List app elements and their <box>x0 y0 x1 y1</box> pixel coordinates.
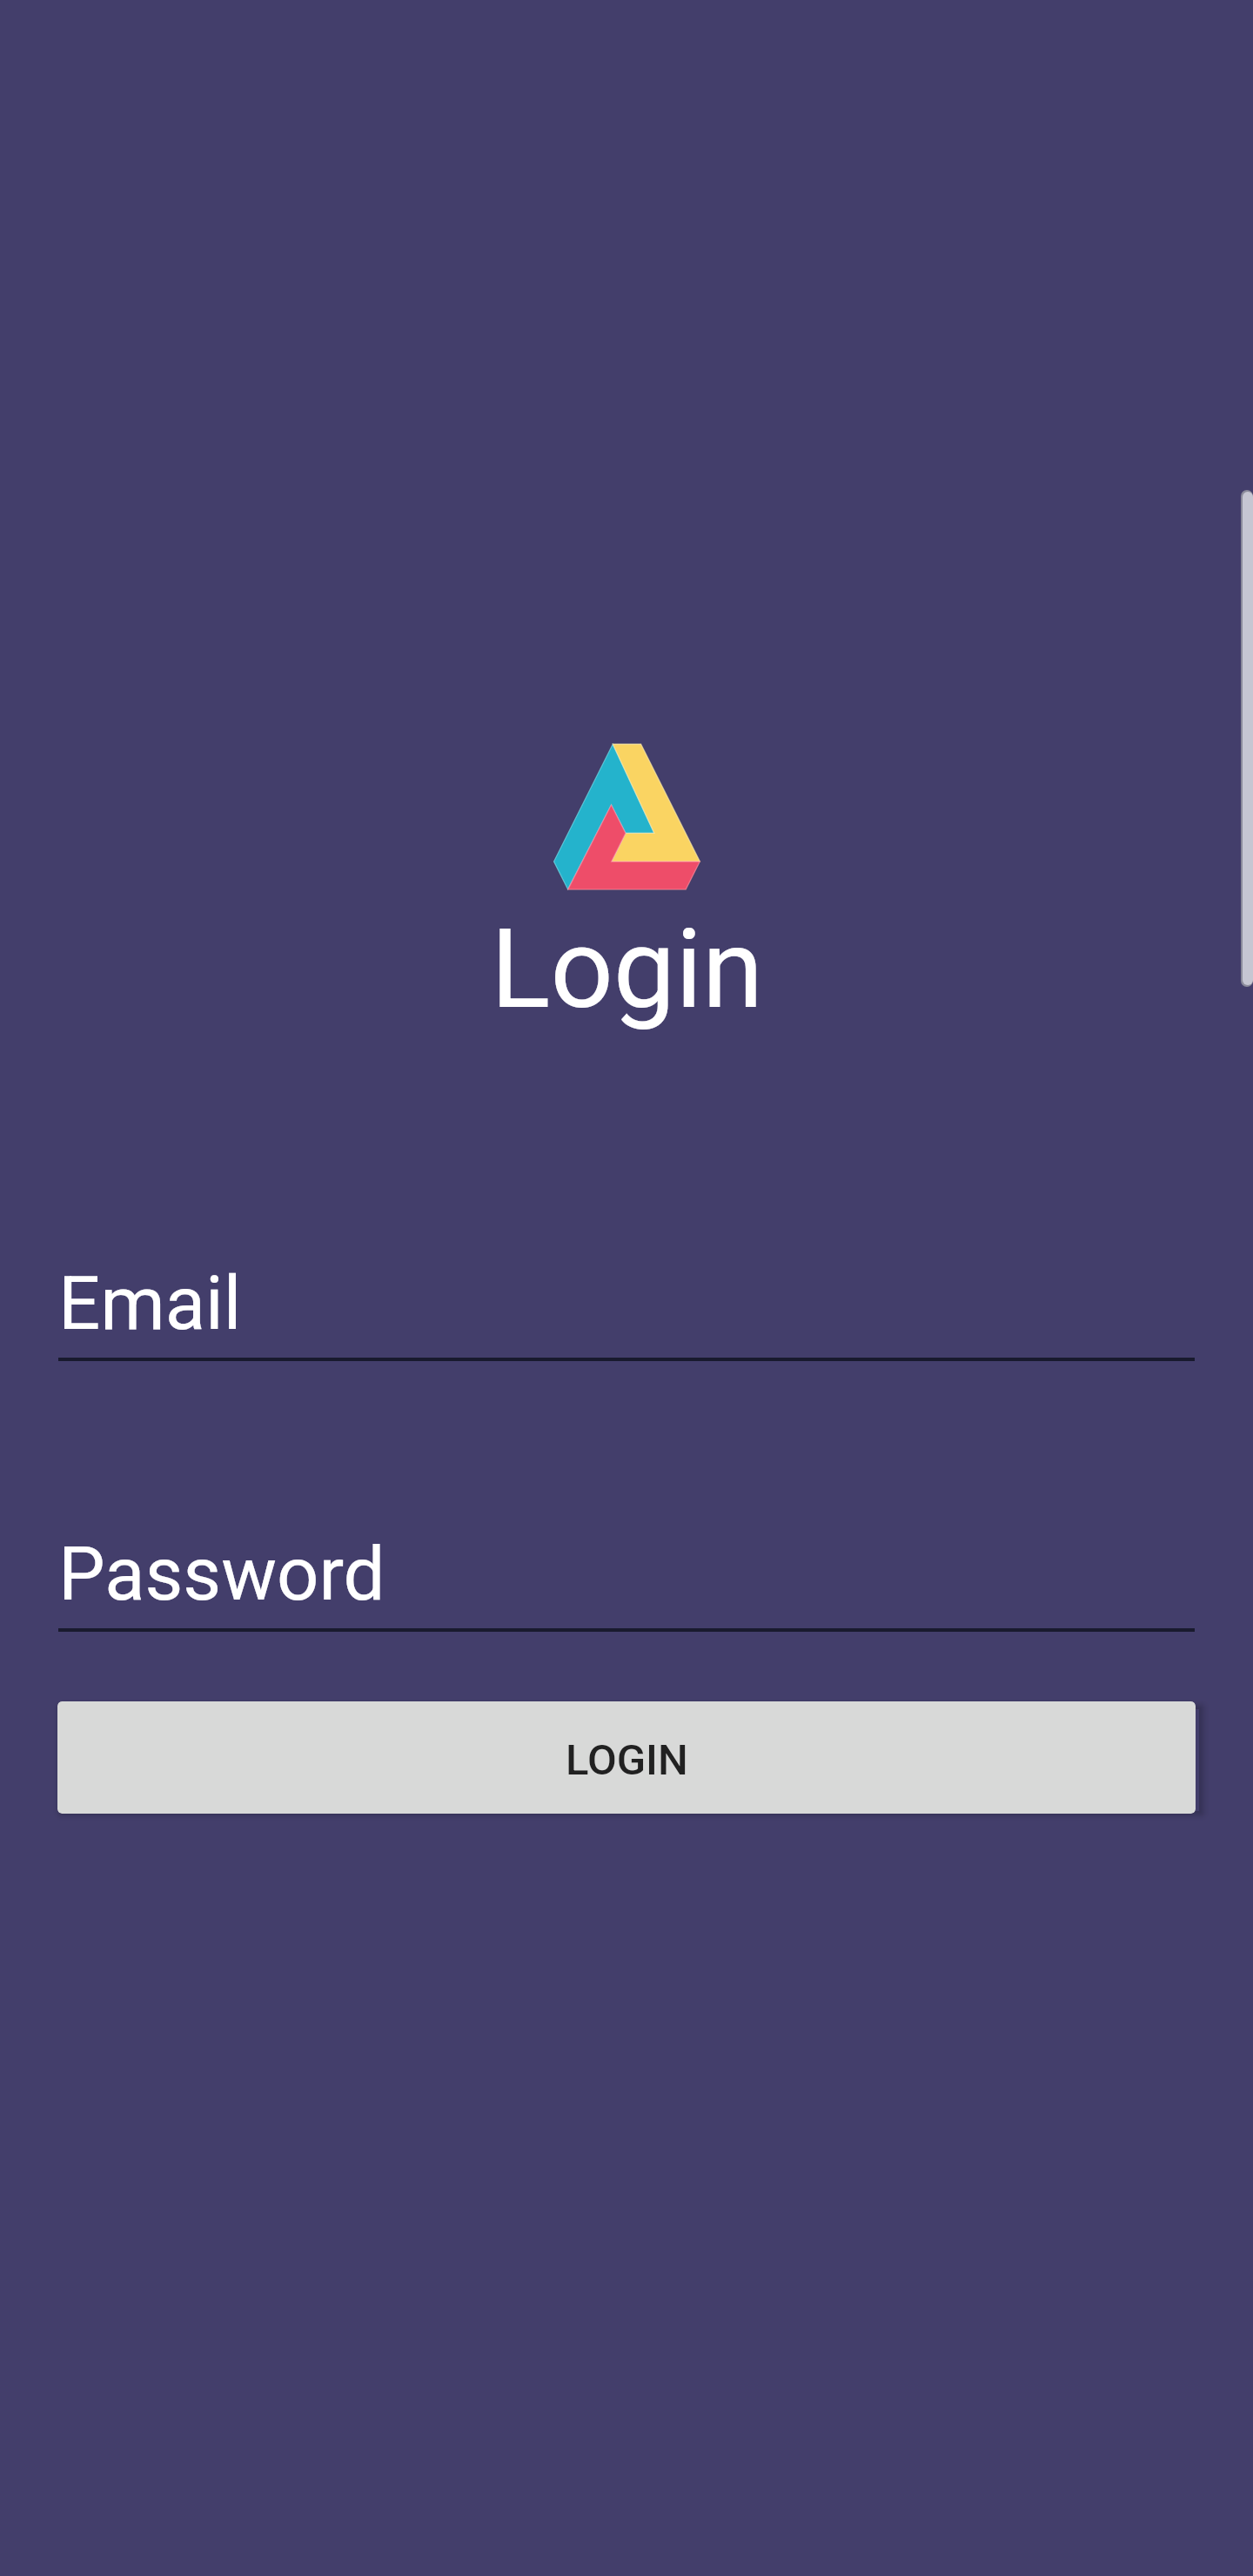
staticText: LOGIN <box>566 1735 688 1785</box>
staticText: Email <box>58 1260 242 1347</box>
other: App logo <box>522 714 731 922</box>
button[interactable]: Email <box>58 1260 1195 1361</box>
button[interactable]: LOGIN <box>57 1701 1196 1814</box>
staticText: Password <box>58 1531 385 1618</box>
staticText: Login <box>491 904 764 1034</box>
button[interactable]: Password <box>58 1531 1195 1632</box>
